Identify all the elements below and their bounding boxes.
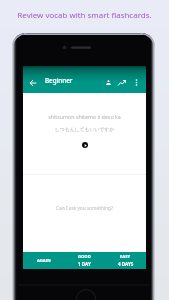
button[interactable]: More options [130,76,143,89]
button[interactable]: GOOD [64,252,105,269]
staticText: shitsumon shitemo ii desu ka [23,113,146,120]
staticText: 1 DAY [78,261,91,267]
staticText: しつもんしてもいいですか [23,126,146,132]
button[interactable]: Play audio [82,142,88,148]
staticText: Can I ask you something? [23,205,146,211]
button[interactable]: AGAIN [23,252,64,269]
staticText: 4 DAYS [118,261,134,267]
staticText: Beginner [45,76,73,85]
button[interactable]: EASY [105,252,146,269]
button[interactable]: Beginner [42,76,76,85]
staticText: AGAIN [37,258,51,264]
button[interactable]: Statistics [115,76,128,89]
staticText: EASY [120,254,131,260]
staticText: GOOD [78,254,91,260]
button[interactable]: Profile [102,76,115,89]
staticText: Review vocab with smart flashcards. [0,10,169,21]
button[interactable]: Back [26,76,39,89]
